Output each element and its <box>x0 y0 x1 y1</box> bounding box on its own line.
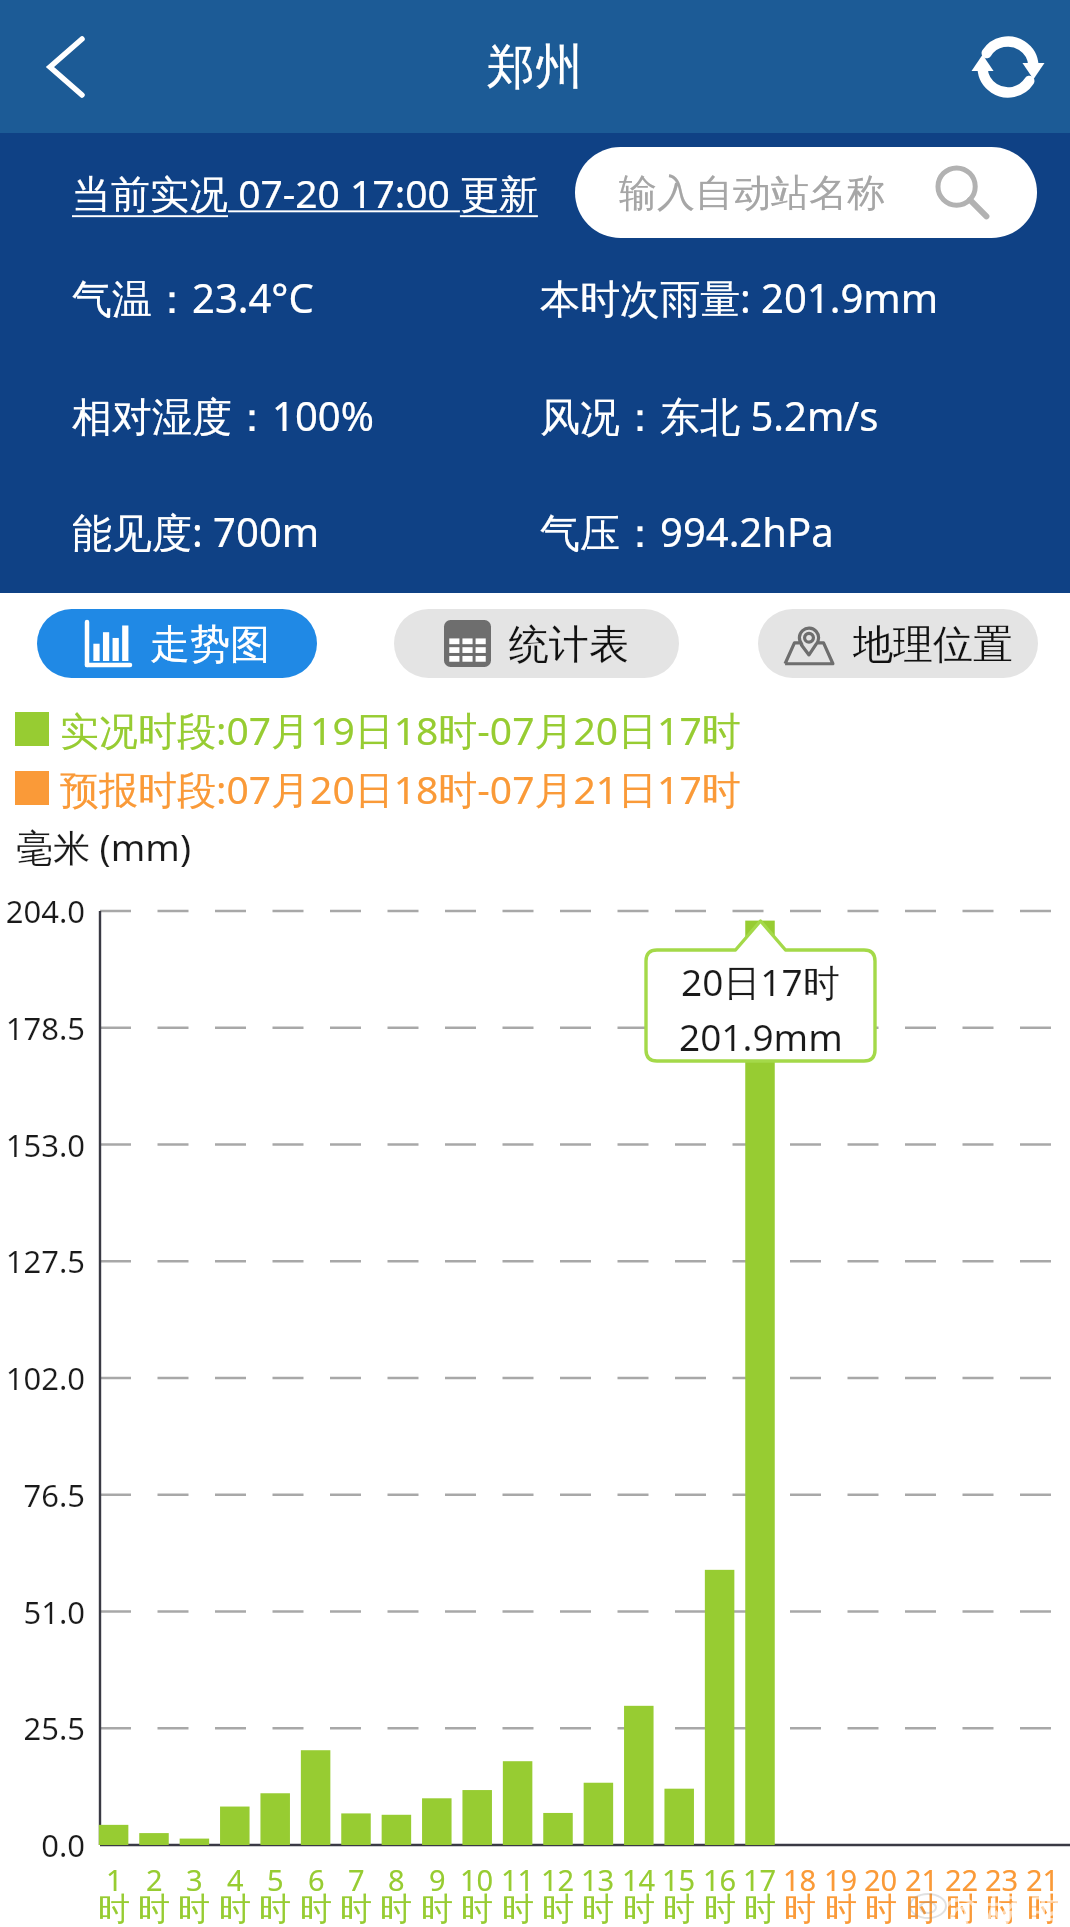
staticText: 18 <box>783 1860 817 1899</box>
staticText: 时 <box>380 1889 412 1927</box>
staticText: 走势图 <box>150 619 270 669</box>
staticText: 20 <box>864 1860 898 1899</box>
staticText: 21 <box>905 1860 939 1899</box>
staticText: 11 <box>501 1860 535 1899</box>
staticText: 12 <box>541 1860 575 1899</box>
staticText: 10 <box>460 1860 494 1899</box>
staticText: 3 <box>186 1860 203 1899</box>
staticText: 时 <box>1027 1889 1059 1927</box>
staticText: 地理位置 <box>853 619 1013 669</box>
button[interactable]: Refresh <box>946 0 1070 133</box>
button[interactable]: Back <box>0 0 132 133</box>
staticText: 统计表 <box>509 619 629 669</box>
staticText: 102.0 <box>0 1357 85 1399</box>
staticText: 实况时段:07月19日18时-07月20日17时 <box>60 703 741 756</box>
staticText: 9 <box>429 1860 446 1899</box>
staticText: 178.5 <box>0 1007 85 1049</box>
staticText: 0.0 <box>0 1824 85 1866</box>
staticText: 2 <box>146 1860 163 1899</box>
staticText: 能见度: 700m <box>72 504 320 559</box>
button[interactable]: 统计表 <box>394 609 679 678</box>
staticText: 19 <box>824 1860 858 1899</box>
staticText: 时 <box>582 1889 614 1927</box>
staticText: 时 <box>259 1889 291 1927</box>
staticText: 时 <box>906 1889 938 1927</box>
staticText: 4 <box>227 1860 244 1899</box>
staticText: 14 <box>622 1860 656 1899</box>
staticText: @杨晓春 <box>938 1881 1070 1927</box>
staticText: 时 <box>744 1889 776 1927</box>
staticText: 时 <box>461 1889 493 1927</box>
staticText: 6 <box>308 1860 325 1899</box>
staticText: 时 <box>865 1889 897 1927</box>
staticText: 17 <box>743 1860 777 1899</box>
staticText: 22 <box>945 1860 979 1899</box>
button[interactable]: 地理位置 <box>758 609 1038 678</box>
staticText: 时 <box>219 1889 251 1927</box>
staticText: 时 <box>98 1889 130 1927</box>
staticText: 25.5 <box>0 1707 85 1749</box>
staticText: 时 <box>704 1889 736 1927</box>
staticText: 相对湿度：100% <box>72 388 374 443</box>
staticText: 23 <box>985 1860 1019 1899</box>
button[interactable]: 输入自动站名称 <box>575 147 1037 238</box>
staticText: 时 <box>986 1889 1018 1927</box>
staticText: 时 <box>663 1889 695 1927</box>
staticText: 20日17时 <box>681 956 840 1007</box>
staticText: 16 <box>703 1860 737 1899</box>
staticText: 5 <box>267 1860 284 1899</box>
staticText: 气压：994.2hPa <box>540 504 834 559</box>
staticText: 7 <box>348 1860 365 1899</box>
staticText: 76.5 <box>0 1474 85 1516</box>
staticText: 204.0 <box>0 890 85 932</box>
staticText: 郑州 <box>487 37 583 97</box>
button[interactable]: 当前实况 07-20 17:00 更新 <box>72 166 538 219</box>
staticText: 风况：东北 5.2m/s <box>540 388 879 443</box>
staticText: 127.5 <box>0 1240 85 1282</box>
staticText: 输入自动站名称 <box>619 169 885 217</box>
staticText: 8 <box>388 1860 405 1899</box>
staticText: 时 <box>138 1889 170 1927</box>
staticText: 时 <box>502 1889 534 1927</box>
staticText: 时 <box>178 1889 210 1927</box>
staticText: 51.0 <box>0 1591 85 1633</box>
staticText: 预报时段:07月20日18时-07月21日17时 <box>60 762 741 815</box>
staticText: 毫米 (mm) <box>16 821 192 872</box>
staticText: 15 <box>662 1860 696 1899</box>
staticText: 时 <box>825 1889 857 1927</box>
staticText: 1 <box>106 1860 123 1899</box>
staticText: 气温：23.4°C <box>72 270 314 325</box>
staticText: 时 <box>300 1889 332 1927</box>
staticText: 201.9mm <box>679 1011 843 1061</box>
staticText: 时 <box>542 1889 574 1927</box>
staticText: 时 <box>946 1889 978 1927</box>
staticText: 时 <box>784 1889 816 1927</box>
staticText: 21 <box>1026 1860 1060 1899</box>
staticText: 本时次雨量: 201.9mm <box>540 270 939 325</box>
staticText: 时 <box>421 1889 453 1927</box>
button[interactable]: 走势图 <box>37 609 317 678</box>
staticText: 时 <box>623 1889 655 1927</box>
staticText: 153.0 <box>0 1124 85 1166</box>
staticText: 时 <box>340 1889 372 1927</box>
staticText: 13 <box>581 1860 615 1899</box>
